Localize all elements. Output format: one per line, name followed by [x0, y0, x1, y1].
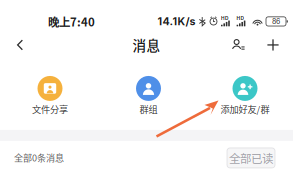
staticText: 消息	[132, 35, 160, 55]
staticText: HD	[237, 15, 244, 21]
staticText: 86	[272, 17, 280, 26]
button[interactable]: 群组	[102, 76, 195, 116]
staticText: 添加好友/群	[220, 102, 269, 116]
button[interactable]: 添加好友/群	[198, 76, 291, 116]
staticText: HD	[221, 15, 228, 21]
button[interactable]: 文件分享	[3, 76, 96, 116]
staticText: 晚上7:40	[48, 13, 95, 30]
staticText: 全部0条消息	[14, 151, 64, 164]
button[interactable]: 联系人	[219, 32, 258, 58]
button[interactable]: 添加	[258, 32, 288, 58]
staticText: 14.1K/s	[157, 15, 195, 28]
staticText: 全部已读	[229, 150, 273, 166]
button[interactable]: 返回	[4, 32, 36, 58]
staticText: 群组	[139, 102, 157, 116]
staticText: 文件分享	[32, 102, 68, 116]
